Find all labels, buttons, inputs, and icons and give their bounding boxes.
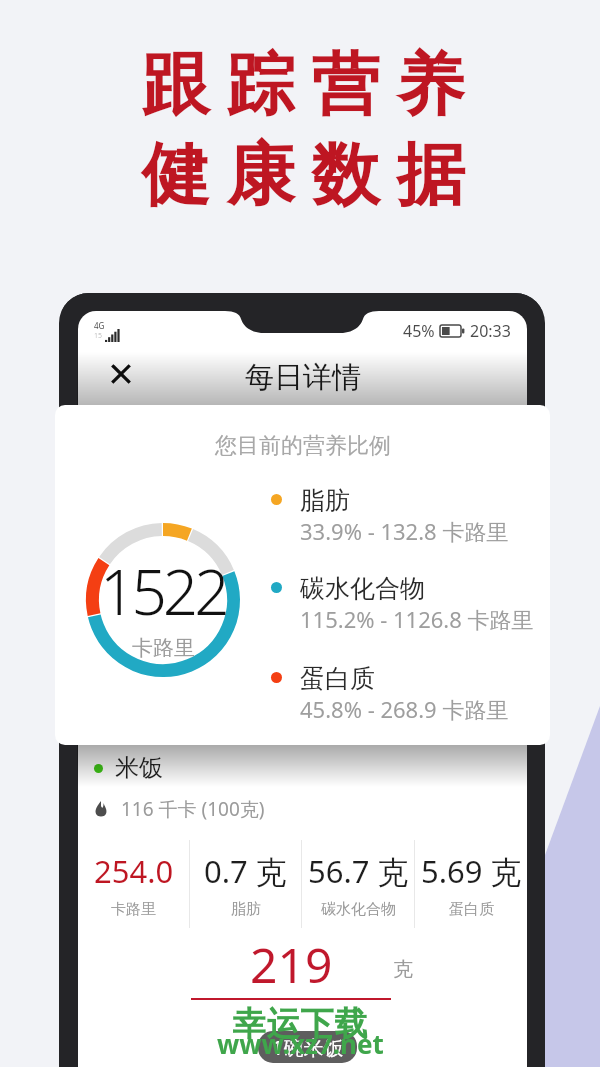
button[interactable]: 0.7 克 <box>190 840 301 928</box>
staticText: 碳水化合物 <box>300 573 425 604</box>
staticText: 1522 <box>100 549 226 633</box>
staticText: 115.2% - 1126.8 卡路里 <box>300 604 534 631</box>
staticText: 254.0 <box>94 850 174 892</box>
staticText: 碳水化合物 <box>321 900 396 919</box>
staticText: 20:33 <box>470 320 511 342</box>
staticText: 卡路里 <box>132 635 195 661</box>
staticText: 每日详情 <box>245 359 361 396</box>
button[interactable]: Close <box>104 357 137 390</box>
staticText: 4G <box>94 320 105 331</box>
staticText: 15 <box>94 331 103 341</box>
staticText: 跟踪营养 <box>133 43 473 129</box>
staticText: 克 <box>393 957 413 982</box>
staticText: 219 <box>250 932 333 997</box>
staticText: 56.7 克 <box>308 850 409 892</box>
button[interactable]: 5.69 克 <box>415 840 527 928</box>
staticText: 45% <box>403 320 435 342</box>
staticText: 45.8% - 268.9 卡路里 <box>300 694 509 721</box>
staticText: 脂肪 <box>231 900 261 919</box>
button[interactable]: 蛋白质 <box>271 663 550 721</box>
button[interactable]: 254.0 <box>78 840 189 928</box>
staticText: 0.7 克 <box>204 850 287 892</box>
button[interactable]: 1碗米饭 <box>258 1031 357 1063</box>
staticText: 1碗米饭 <box>272 1034 344 1061</box>
button[interactable]: 脂肪 <box>271 485 550 543</box>
staticText: 脂肪 <box>300 485 350 516</box>
staticText: 健康数据 <box>133 133 473 219</box>
staticText: 米饭 <box>115 753 163 783</box>
staticText: 幸运下载 <box>232 1003 368 1045</box>
button[interactable]: 56.7 克 <box>302 840 414 928</box>
staticText: 116 千卡 (100克) <box>121 796 265 822</box>
staticText: 卡路里 <box>111 900 156 919</box>
staticText: 33.9% - 132.8 卡路里 <box>300 516 509 543</box>
staticText: 5.69 克 <box>421 850 522 892</box>
staticText: 蛋白质 <box>449 900 494 919</box>
staticText: www.xz7.net <box>217 1026 384 1061</box>
staticText: 您目前的营养比例 <box>215 432 391 460</box>
button[interactable]: 米饭 <box>94 753 527 783</box>
staticText: 蛋白质 <box>300 663 375 694</box>
button[interactable]: 碳水化合物 <box>271 573 550 631</box>
